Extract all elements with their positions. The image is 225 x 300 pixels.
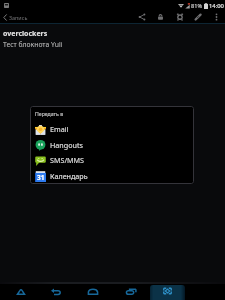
button[interactable]: Screenshot [150,285,185,300]
button[interactable]: Back [48,285,64,298]
staticText: 31 [37,173,45,182]
button[interactable]: 31 [30,168,194,184]
staticText: 81% [191,2,203,10]
staticText: 14:00 [209,2,224,10]
staticText: SMS/MMS [50,155,85,165]
button[interactable]: Lock [155,11,166,23]
button[interactable]: Email [30,121,194,137]
staticText: Календарь [50,171,88,181]
staticText: Передать в [35,110,64,117]
staticText: Hangouts [50,140,84,150]
button[interactable]: Edit [192,11,203,23]
staticText: Запись [9,14,28,21]
button[interactable]: Recents [123,285,139,298]
button[interactable]: Up [13,285,29,298]
button[interactable]: SMS/MMS [30,152,194,168]
staticText: Тест блокнота Yuli [3,40,63,49]
button[interactable]: Запись [2,11,29,23]
staticText: overclockers [3,29,48,39]
button[interactable]: Share [136,11,147,23]
button[interactable]: Home [85,285,101,298]
button[interactable]: More options [211,11,222,23]
staticText: Email [50,124,69,134]
button[interactable]: Alarm [174,11,185,23]
button[interactable]: Hangouts [30,137,194,153]
